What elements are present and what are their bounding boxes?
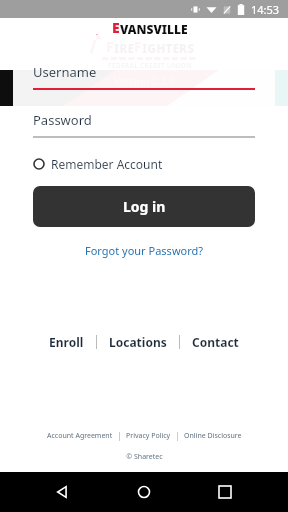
staticText: VANSVILLE: [120, 21, 188, 37]
staticText: Enroll: [49, 334, 84, 350]
button[interactable]: Remember Account: [33, 154, 163, 174]
button[interactable]: Recent apps: [207, 474, 243, 510]
button[interactable]: Forgot your Password?: [33, 241, 255, 260]
button[interactable]: Privacy Policy: [120, 428, 177, 444]
button[interactable]: Back: [45, 474, 81, 510]
staticText: Privacy Policy: [126, 431, 171, 441]
button[interactable]: Enroll: [37, 330, 96, 354]
button[interactable]: Locations: [97, 330, 179, 354]
button[interactable]: Contact: [180, 330, 251, 354]
staticText: F: [134, 37, 142, 56]
staticText: Forgot your Password?: [85, 243, 204, 258]
staticText: IRE: [114, 40, 134, 56]
button[interactable]: Online Disclosure: [178, 428, 248, 444]
staticText: FEDERAL CREDIT UNION: [108, 61, 192, 70]
button[interactable]: Home: [126, 474, 162, 510]
button[interactable]: Account Agreement: [41, 428, 119, 444]
staticText: Username: [33, 63, 97, 81]
staticText: E: [112, 18, 120, 37]
staticText: Account Agreement: [47, 431, 113, 441]
staticText: Online Disclosure: [184, 431, 242, 441]
staticText: Locations: [109, 334, 167, 350]
staticText: Contact: [192, 334, 239, 350]
staticText: Password: [33, 111, 92, 129]
staticText: IGHTERS: [142, 40, 195, 56]
staticText: © Sharetec: [126, 452, 163, 462]
staticText: Log in: [123, 197, 166, 216]
staticText: F: [106, 37, 114, 56]
button[interactable]: Log in: [33, 186, 255, 227]
staticText: 14:53: [251, 2, 280, 17]
staticText: Remember Account: [51, 156, 163, 172]
